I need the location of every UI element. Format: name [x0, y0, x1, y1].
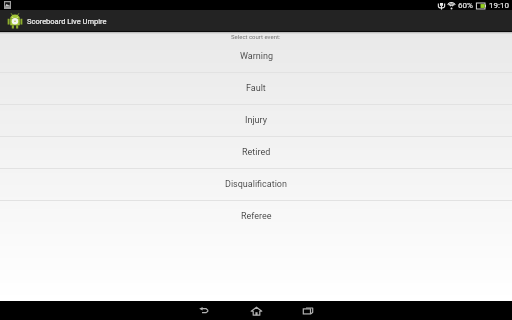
staticText: Injury	[245, 115, 267, 126]
button[interactable]: Injury	[0, 105, 512, 136]
button[interactable]: Disqualification	[0, 169, 512, 200]
staticText: Scoreboard Live Umpire	[27, 17, 107, 26]
button[interactable]: Warning	[0, 40, 512, 72]
button[interactable]: Recent apps	[282, 301, 334, 320]
button[interactable]: Referee	[0, 201, 512, 232]
button[interactable]: Retired	[0, 137, 512, 168]
staticText: Warning	[240, 51, 273, 62]
staticText: 60%	[458, 1, 473, 10]
button[interactable]: Fault	[0, 73, 512, 104]
staticText: 19:10	[489, 1, 509, 10]
staticText: Retired	[242, 147, 271, 158]
button[interactable]: Back	[178, 301, 230, 320]
staticText: Referee	[241, 211, 272, 222]
staticText: Fault	[246, 83, 266, 94]
staticText: Select court event:	[231, 33, 281, 40]
button[interactable]: Home	[230, 301, 282, 320]
staticText: Disqualification	[225, 179, 287, 190]
